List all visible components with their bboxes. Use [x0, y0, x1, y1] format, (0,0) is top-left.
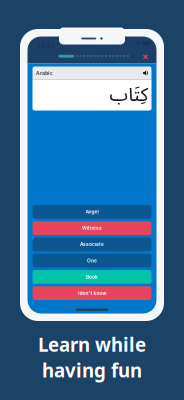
button[interactable]: One [32, 254, 151, 267]
button[interactable]: Witness [32, 221, 151, 235]
button[interactable]: Associate [32, 237, 151, 251]
staticText: Learn while [38, 332, 146, 357]
staticText: 11:42 [37, 41, 55, 50]
staticText: Witness [82, 225, 102, 231]
staticText: كِتَاب [109, 75, 148, 115]
button[interactable]: Angel [32, 205, 151, 219]
staticText: having fun [42, 358, 142, 383]
staticText: Associate [80, 241, 104, 247]
staticText: I don't know [77, 290, 106, 296]
button[interactable]: I don't know [32, 286, 151, 300]
staticText: Book [86, 274, 98, 280]
staticText: Angel [85, 209, 98, 215]
button[interactable]: Book [32, 270, 151, 284]
staticText: One [87, 258, 97, 263]
staticText: Arabic [36, 69, 53, 77]
